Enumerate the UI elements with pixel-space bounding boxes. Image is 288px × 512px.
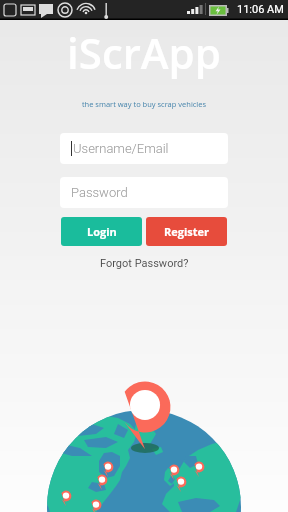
staticText: Forgot Password?: [100, 257, 189, 270]
button[interactable]: Password: [60, 177, 228, 208]
button[interactable]: Forgot Password?: [100, 257, 189, 270]
button[interactable]: Register: [146, 217, 227, 246]
button[interactable]: Username/Email: [60, 133, 228, 164]
button[interactable]: Login: [61, 217, 142, 246]
staticText: Password: [71, 185, 128, 200]
staticText: 11:06 AM: [237, 3, 284, 16]
staticText: Login: [87, 224, 117, 239]
staticText: iScrApp: [0, 24, 288, 81]
staticText: Username/Email: [73, 141, 169, 156]
staticText: Register: [164, 224, 210, 239]
staticText: the smart way to buy scrap vehicles: [0, 99, 288, 109]
